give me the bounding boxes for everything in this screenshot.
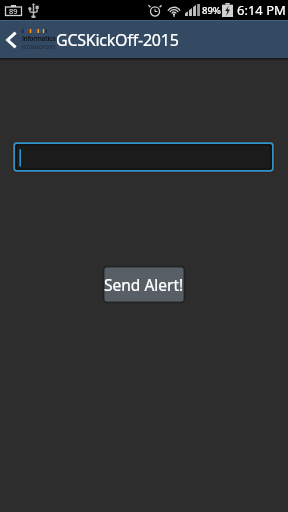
staticText: 89% [202, 4, 221, 17]
staticText: 6:14 PM [237, 1, 286, 19]
button[interactable] [12, 141, 275, 173]
staticText: Send Alert! [104, 274, 184, 295]
staticText: informatica [22, 34, 56, 43]
button[interactable]: Back [1, 21, 22, 58]
staticText: 89 [9, 6, 18, 16]
staticText: GCSKickOff-2015 [56, 29, 179, 51]
button[interactable]: Send Alert! [103, 266, 185, 303]
staticText: GCS KickOff 2015 [22, 44, 56, 50]
